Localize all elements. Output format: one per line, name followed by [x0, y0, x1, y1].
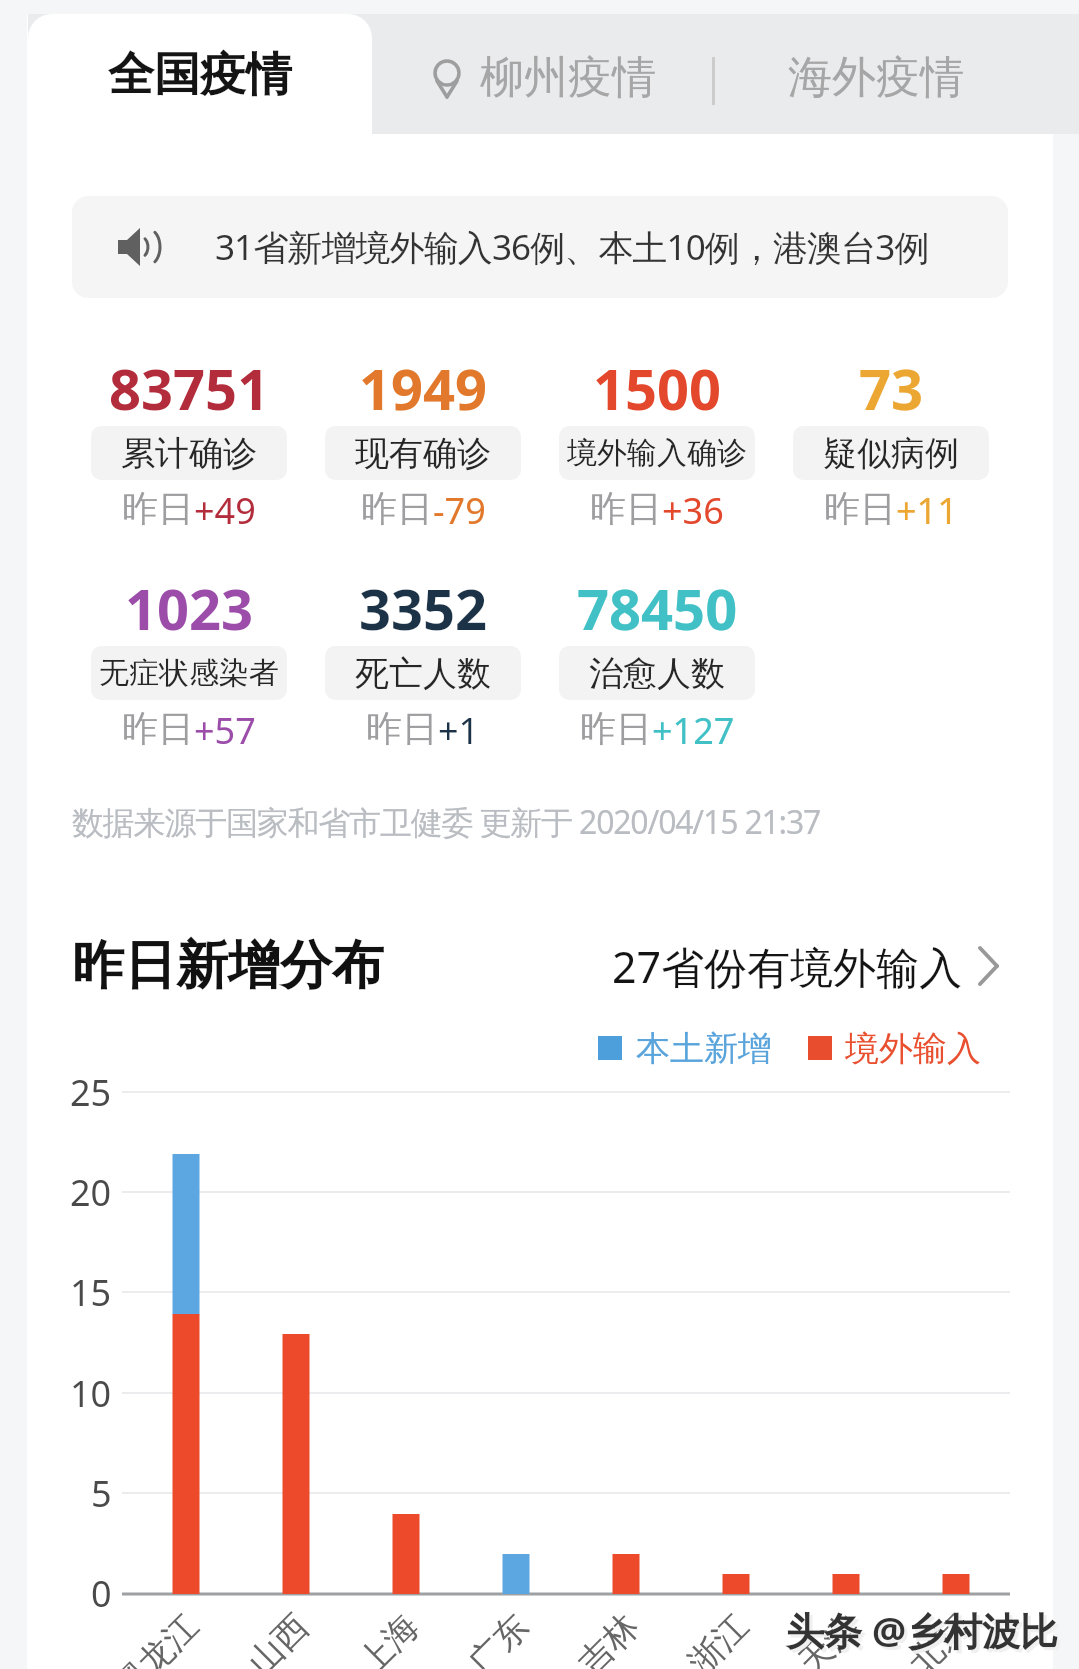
staticText: 数据来源于国家和省市卫健委 更新于 2020/04/15 21:37: [72, 800, 821, 844]
staticText: 73: [859, 350, 924, 426]
staticText: +1: [438, 706, 480, 750]
staticText: +11: [896, 486, 958, 530]
staticText: 浙江: [679, 1605, 758, 1669]
button[interactable]: 境外输入确诊: [559, 426, 755, 480]
button[interactable]: 死亡人数: [325, 646, 521, 700]
staticText: 吉林: [569, 1605, 648, 1669]
staticText: 15: [70, 1268, 112, 1317]
staticText: 昨日新增分布: [72, 933, 384, 999]
staticText: +36: [662, 486, 724, 530]
staticText: 疑似病例: [823, 432, 959, 475]
staticText: -79: [433, 486, 486, 530]
staticText: 昨日: [122, 486, 194, 530]
staticText: 1500: [593, 350, 722, 426]
staticText: 昨日: [366, 706, 438, 750]
staticText: 死亡人数: [355, 652, 491, 695]
button[interactable]: 全国疫情: [28, 14, 372, 136]
staticText: 20: [70, 1168, 112, 1217]
staticText: 昨日: [590, 486, 662, 530]
staticText: 境外输入确诊: [567, 434, 747, 472]
staticText: 头条 @乡村波比: [786, 1604, 1059, 1656]
button[interactable]: 累计确诊: [91, 426, 287, 480]
staticText: +49: [194, 486, 256, 530]
button[interactable]: 现有确诊: [325, 426, 521, 480]
staticText: 昨日: [580, 706, 652, 750]
staticText: 广东: [459, 1605, 538, 1669]
button[interactable]: 无症状感染者: [91, 646, 287, 700]
button[interactable]: 治愈人数: [559, 646, 755, 700]
staticText: 本土新增: [636, 1027, 772, 1070]
staticText: 头条 @乡村波比: [789, 1607, 1062, 1659]
staticText: 柳州疫情: [480, 50, 656, 105]
button[interactable]: [72, 196, 1008, 298]
button[interactable]: [715, 14, 1045, 134]
staticText: 黑龙江: [105, 1605, 207, 1669]
staticText: 5: [91, 1469, 112, 1518]
staticText: 0: [91, 1569, 112, 1618]
staticText: 3352: [359, 570, 488, 646]
staticText: 27省份有境外输入: [612, 937, 963, 996]
staticText: 上海: [349, 1605, 428, 1669]
staticText: 累计确诊: [121, 432, 257, 475]
staticText: 无症状感染者: [99, 654, 279, 692]
staticText: 天津: [789, 1605, 868, 1669]
staticText: 全国疫情: [108, 46, 292, 104]
button[interactable]: 疑似病例: [793, 426, 989, 480]
staticText: 昨日: [122, 706, 194, 750]
button[interactable]: [600, 930, 1010, 1002]
button[interactable]: [372, 14, 712, 134]
staticText: 现有确诊: [355, 432, 491, 475]
staticText: 31省新增境外输入36例、本土10例，港澳台3例: [215, 223, 929, 271]
staticText: 10: [70, 1369, 112, 1418]
staticText: 海外疫情: [788, 50, 964, 105]
staticText: 昨日: [824, 486, 896, 530]
staticText: 治愈人数: [589, 652, 725, 695]
staticText: +57: [194, 706, 256, 750]
staticText: 昨日: [361, 486, 433, 530]
staticText: 78450: [577, 570, 738, 646]
staticText: 83751: [109, 350, 270, 426]
staticText: 25: [70, 1068, 112, 1117]
staticText: 境外输入: [845, 1027, 981, 1070]
staticText: +127: [652, 706, 735, 750]
staticText: 1023: [125, 570, 254, 646]
staticText: 山西: [239, 1605, 318, 1669]
staticText: 北京: [899, 1605, 978, 1669]
staticText: 1949: [359, 350, 488, 426]
